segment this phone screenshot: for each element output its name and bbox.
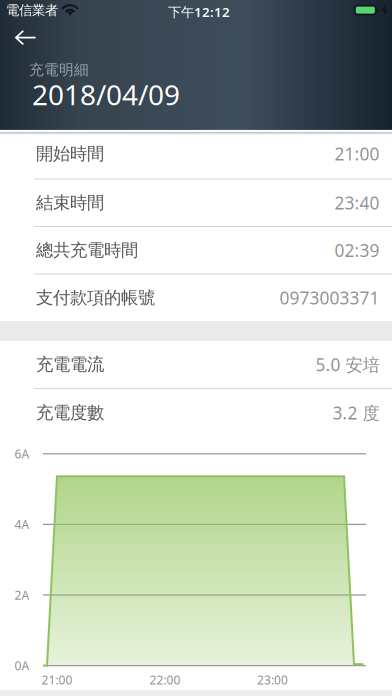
staticText: 充電電流 bbox=[36, 354, 104, 375]
staticText: 23:40 bbox=[334, 191, 379, 214]
staticText: 22:00 bbox=[149, 672, 180, 688]
staticText: 0A bbox=[14, 658, 29, 673]
staticText: 開始時間 bbox=[36, 143, 104, 164]
staticText: 4A bbox=[14, 516, 29, 532]
staticText: 結束時間 bbox=[36, 192, 104, 213]
staticText: 下午12:12 bbox=[168, 3, 230, 21]
staticText: 3.2 度 bbox=[332, 401, 379, 424]
staticText: 21:00 bbox=[41, 672, 72, 688]
staticText: 總共充電時間 bbox=[36, 240, 138, 261]
staticText: 充電度數 bbox=[36, 402, 104, 423]
staticText: 2A bbox=[14, 587, 29, 603]
staticText: 電信業者 bbox=[6, 2, 58, 19]
staticText: 0973003371 bbox=[279, 286, 379, 309]
staticText: 23:00 bbox=[257, 672, 288, 688]
staticText: 02:39 bbox=[334, 239, 379, 262]
staticText: 5.0 安培 bbox=[315, 353, 379, 376]
staticText: 充電明細 bbox=[29, 61, 89, 79]
staticText: 2018/04/09 bbox=[32, 76, 180, 113]
staticText: 21:00 bbox=[334, 142, 379, 165]
staticText: 支付款項的帳號 bbox=[36, 287, 155, 308]
staticText: 6A bbox=[14, 446, 29, 462]
button[interactable] bbox=[0, 20, 36, 46]
